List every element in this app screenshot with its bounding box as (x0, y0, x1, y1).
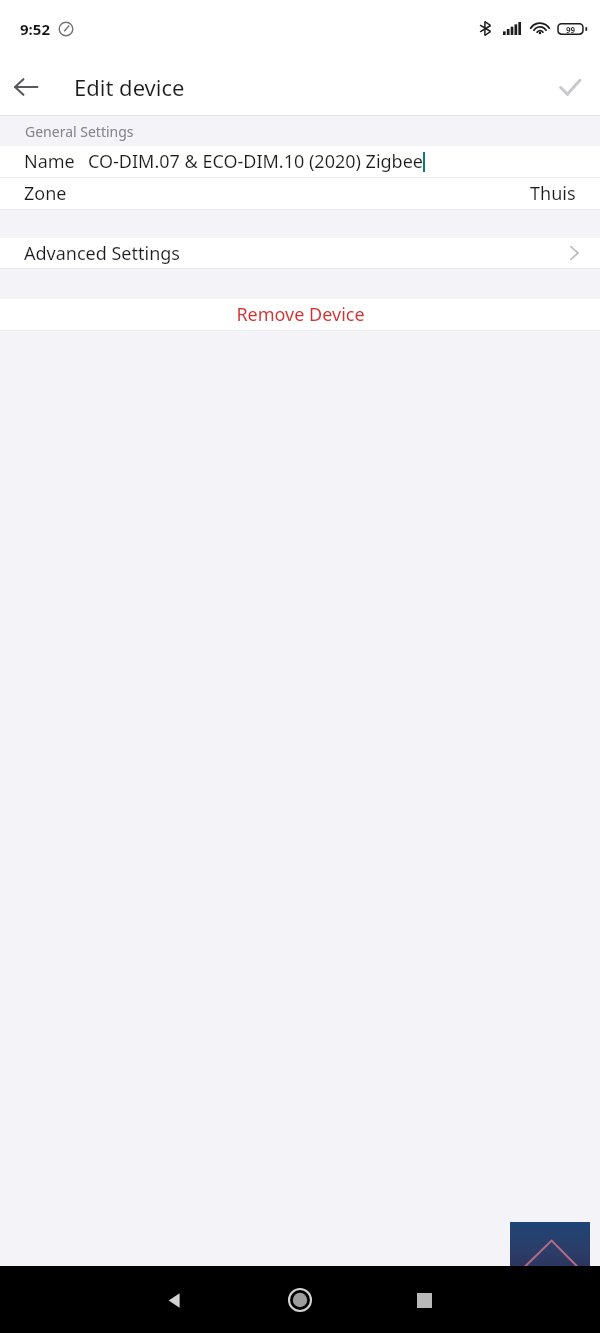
staticText: 9:52 (20, 19, 50, 39)
staticText: General Settings (25, 122, 134, 141)
staticText: Name (24, 149, 75, 174)
button[interactable]: Recents (394, 1270, 454, 1330)
button[interactable]: Home (270, 1270, 330, 1330)
button[interactable]: Save (543, 60, 597, 114)
button[interactable]: Back (0, 61, 52, 113)
button[interactable]: Name (0, 146, 600, 177)
staticText: Thuis (530, 181, 576, 206)
staticText: Remove Device (236, 302, 365, 327)
staticText: Advanced Settings (24, 241, 180, 266)
button[interactable]: Advanced Settings (0, 238, 600, 268)
staticText: CO-DIM.07 & ECO-DIM.10 (2020) Zigbee (88, 149, 423, 174)
staticText: Edit device (74, 72, 185, 102)
button[interactable]: Zone (0, 178, 600, 209)
button[interactable]: Back (144, 1270, 204, 1330)
staticText: 99 (566, 24, 576, 35)
staticText: Zone (24, 181, 67, 206)
button[interactable]: Remove Device (0, 299, 600, 330)
